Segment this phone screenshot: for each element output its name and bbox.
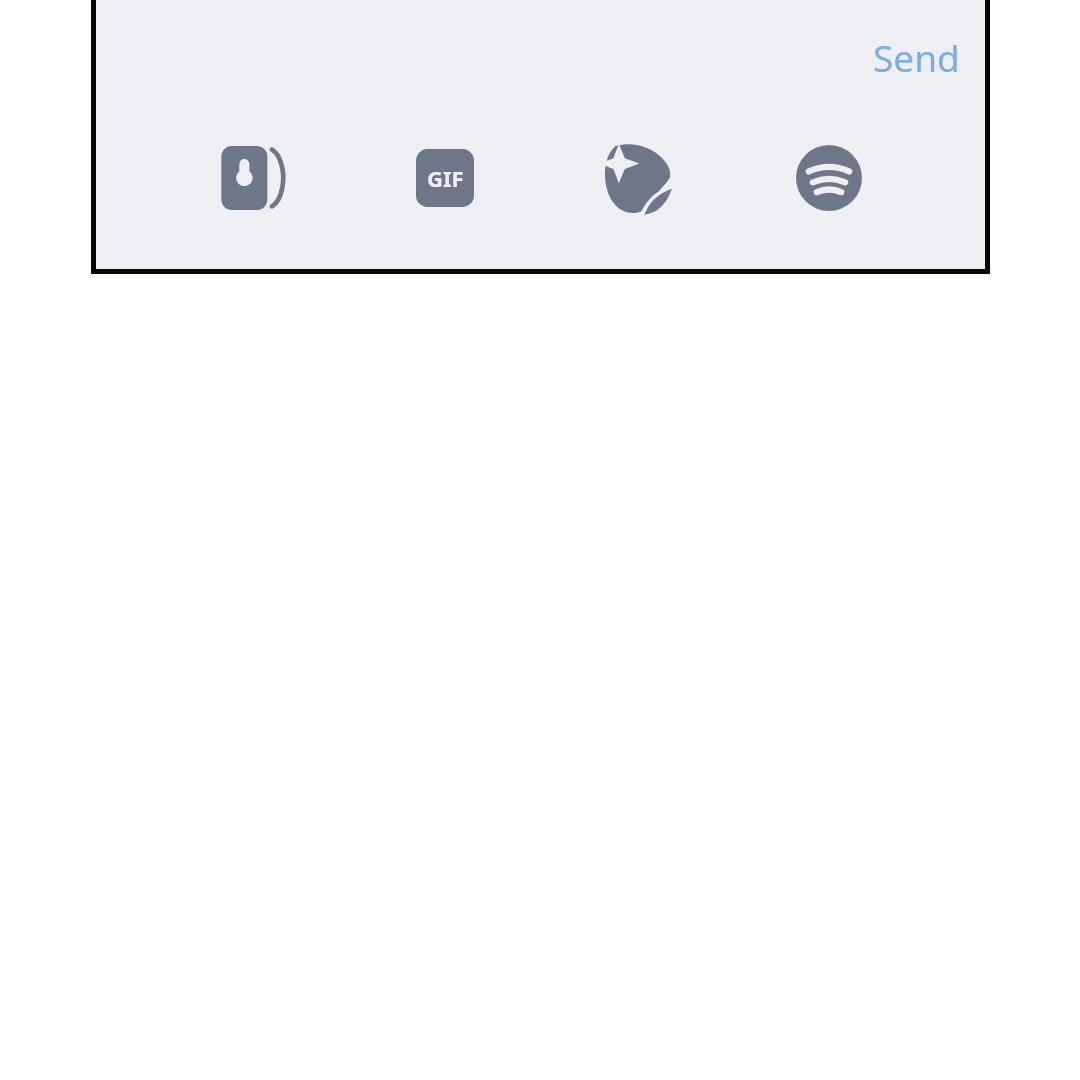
button[interactable]: Photos xyxy=(156,124,349,232)
button[interactable]: Stickers xyxy=(541,124,733,232)
button[interactable]: GIF xyxy=(349,124,541,232)
button[interactable]: Send xyxy=(865,26,968,88)
staticText: GIF xyxy=(427,163,464,193)
staticText: Send xyxy=(873,32,960,82)
button[interactable]: Spotify xyxy=(733,124,925,232)
